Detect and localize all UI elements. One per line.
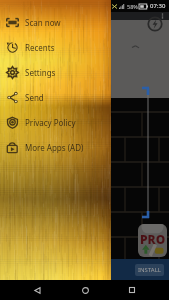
button[interactable]: Home: [74, 280, 96, 300]
staticText: Send: [25, 92, 44, 103]
staticText: Settings: [25, 67, 56, 78]
button[interactable]: Scan now: [0, 10, 111, 35]
staticText: More Apps (AD): [25, 142, 84, 153]
button[interactable]: Recents: [0, 35, 111, 60]
button[interactable]: Recent apps: [121, 280, 143, 300]
staticText: Scan now: [25, 17, 61, 28]
staticText: Privacy Policy: [25, 117, 76, 128]
button[interactable]: Back: [26, 280, 48, 300]
staticText: Recents: [25, 42, 55, 53]
button[interactable]: Privacy Policy: [0, 110, 111, 135]
staticText: 58%: [127, 3, 138, 10]
staticText: 07:30: [150, 2, 166, 10]
staticText: INSTALL: [138, 266, 161, 274]
button[interactable]: Settings: [0, 60, 111, 85]
staticText: Pepephone: [3, 2, 36, 10]
button[interactable]: INSTALL: [135, 264, 164, 276]
button[interactable]: More Apps (AD): [0, 135, 111, 160]
staticText: PRO: [140, 231, 166, 247]
button[interactable]: Send: [0, 85, 111, 110]
